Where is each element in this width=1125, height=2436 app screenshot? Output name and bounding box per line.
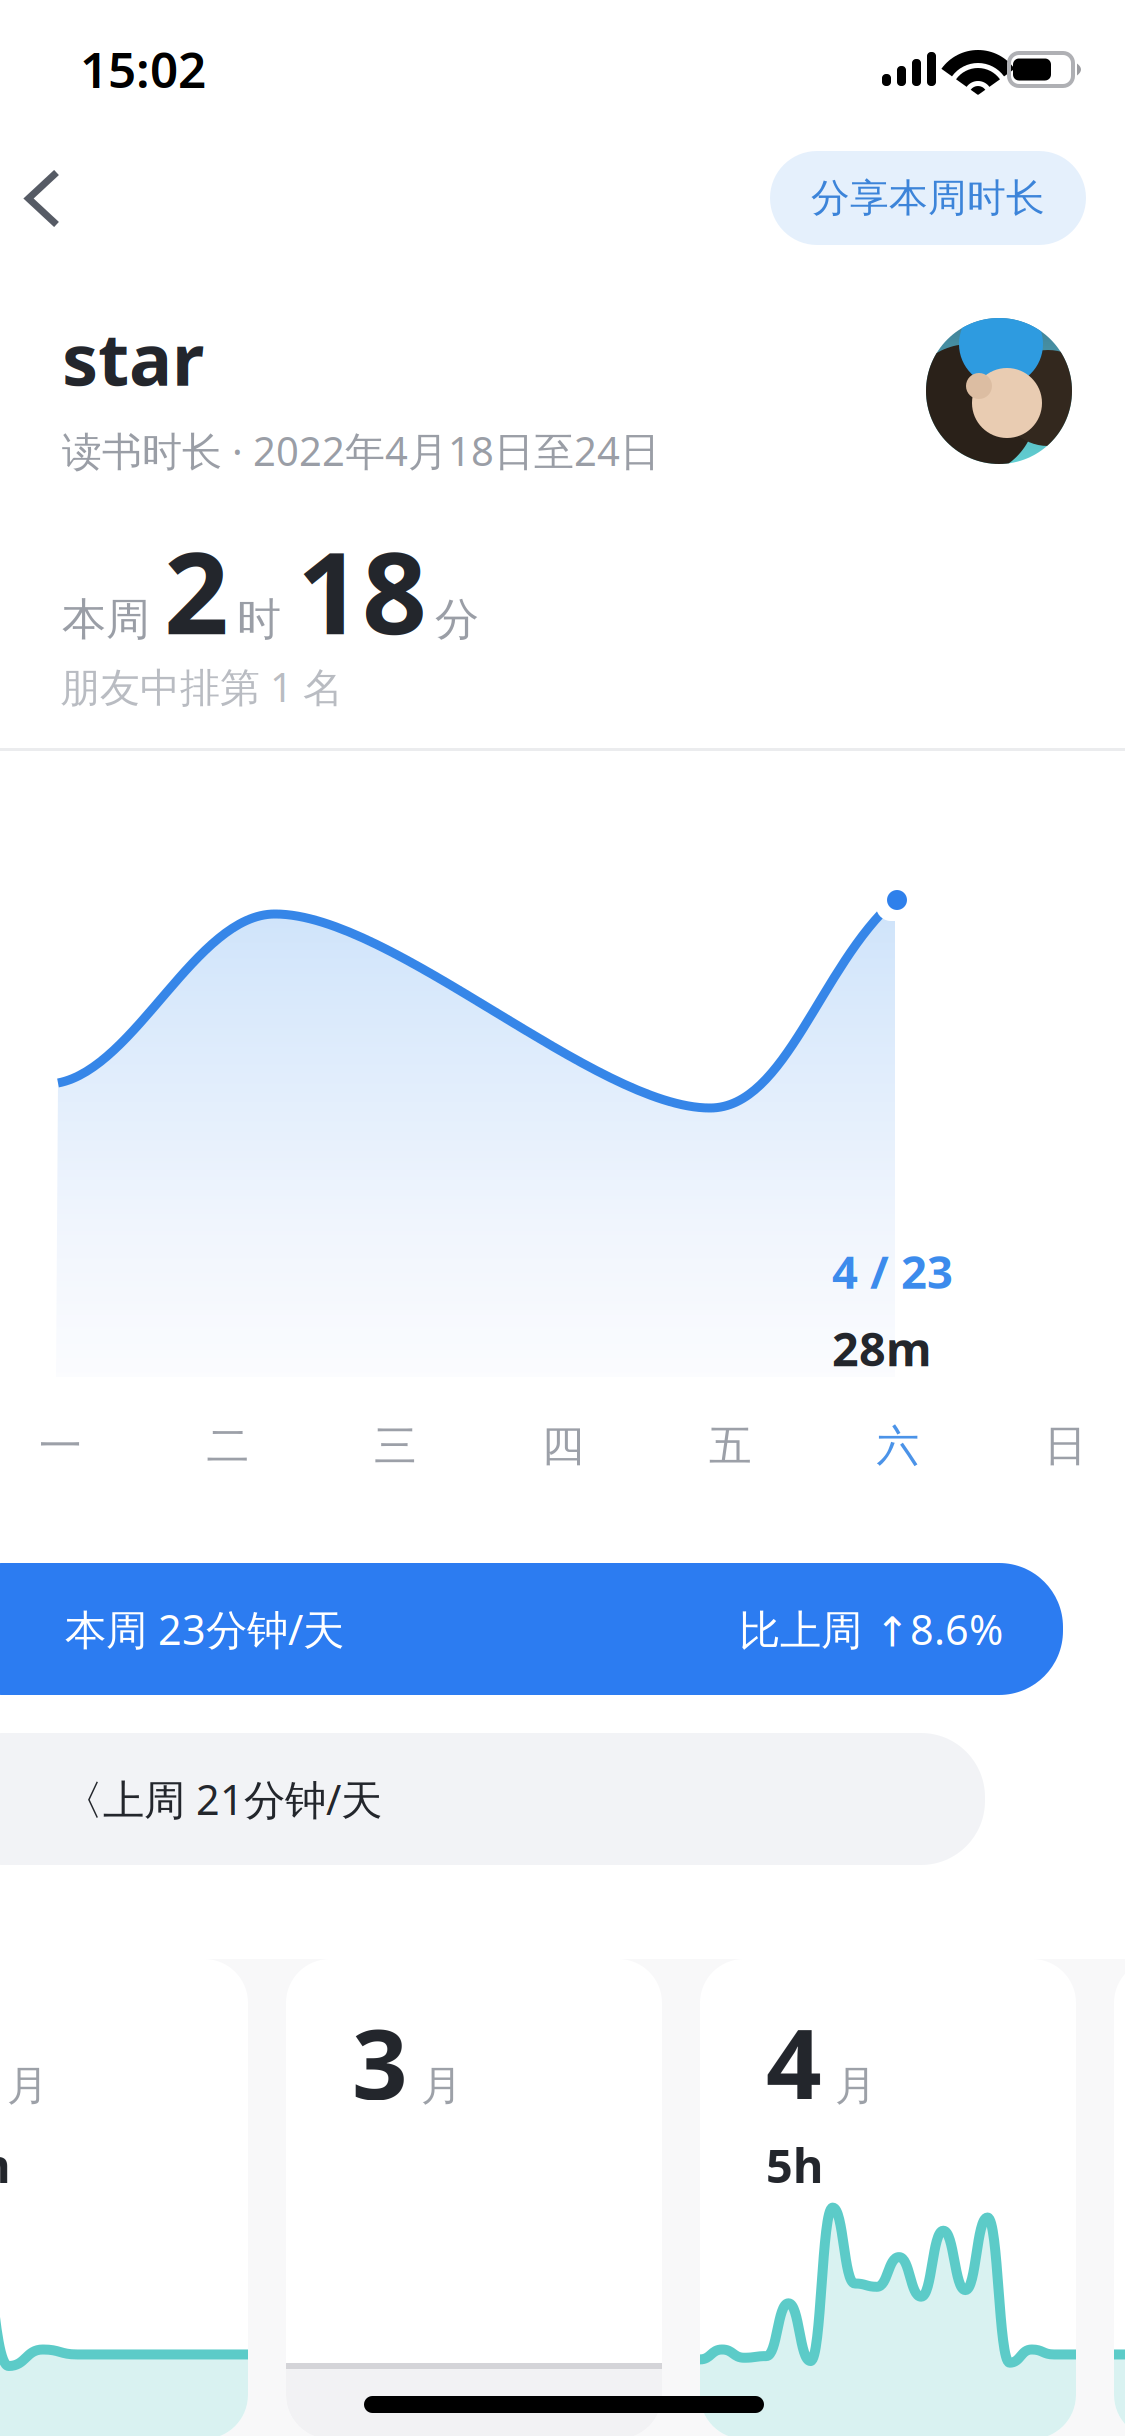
button[interactable]: 四 — [479, 1398, 646, 1494]
staticText: 18 — [297, 515, 427, 665]
staticText: 3m — [0, 2134, 11, 2196]
staticText: 五 — [709, 1420, 752, 1472]
staticText: 3 — [352, 1997, 408, 2126]
staticText: 读书时长 · 2022年4月18日至24日 — [62, 424, 660, 477]
staticText: 六 — [876, 1420, 919, 1472]
button[interactable]: 日 — [982, 1398, 1125, 1494]
staticText: 比上周 ↑8.6% — [739, 1602, 1003, 1656]
staticText: 28m — [832, 1317, 932, 1379]
staticText: 日 — [1044, 1420, 1087, 1472]
staticText: 4 / 23 — [832, 1241, 953, 1301]
staticText: star — [62, 310, 204, 406]
staticText: 〈上周 21分钟/天 — [62, 1772, 382, 1826]
staticText: 分 — [435, 592, 479, 646]
staticText: 15:02 — [80, 36, 206, 101]
button[interactable]: 一 — [0, 1398, 144, 1494]
button[interactable]: 六 — [814, 1398, 981, 1494]
staticText: 5h — [766, 2134, 823, 2196]
button[interactable]: 三 — [312, 1398, 479, 1494]
staticText: 4 — [766, 1997, 822, 2126]
staticText: 二 — [206, 1420, 249, 1472]
staticText: 时 — [237, 592, 281, 646]
button[interactable]: 五 — [647, 1398, 814, 1494]
staticText: 四 — [541, 1420, 584, 1472]
staticText: 朋友中排第 1 名 — [60, 660, 343, 713]
staticText: 月 — [835, 2060, 876, 2111]
staticText: 一 — [39, 1420, 82, 1472]
button[interactable]: 分享本周时长 — [770, 151, 1086, 245]
button[interactable]: 本周 23分钟/天 — [0, 1563, 1063, 1695]
staticText: 分享本周时长 — [811, 174, 1045, 222]
staticText: 月 — [7, 2060, 48, 2111]
button[interactable]: 〈上周 21分钟/天 — [0, 1733, 985, 1865]
staticText: 本周 — [62, 592, 150, 646]
staticText: 三 — [374, 1420, 417, 1472]
staticText: 2 — [164, 515, 229, 665]
staticText: 本周 23分钟/天 — [65, 1602, 344, 1656]
button[interactable]: 二 — [144, 1398, 311, 1494]
staticText: 月 — [421, 2060, 462, 2111]
button[interactable]: Back — [0, 139, 85, 258]
